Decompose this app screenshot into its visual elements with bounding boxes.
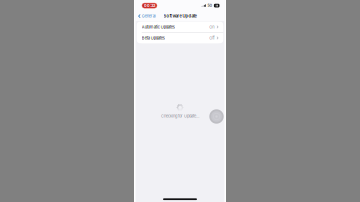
staticText: On (209, 24, 214, 29)
staticText: Automatic Updates (142, 24, 175, 29)
staticText: Off (209, 35, 214, 40)
button[interactable]: Beta Updates (137, 33, 223, 43)
staticText: Software Update (163, 14, 196, 19)
staticText: Beta Updates (142, 35, 165, 40)
staticText: 00:33 (144, 3, 155, 8)
staticText: Checking for Update… (161, 114, 199, 118)
button[interactable]: General (137, 12, 157, 20)
button[interactable]: AssistiveTouch (209, 109, 224, 124)
staticText: General (142, 14, 156, 18)
staticText: 5G (207, 3, 212, 8)
button[interactable]: Automatic Updates (137, 22, 223, 32)
